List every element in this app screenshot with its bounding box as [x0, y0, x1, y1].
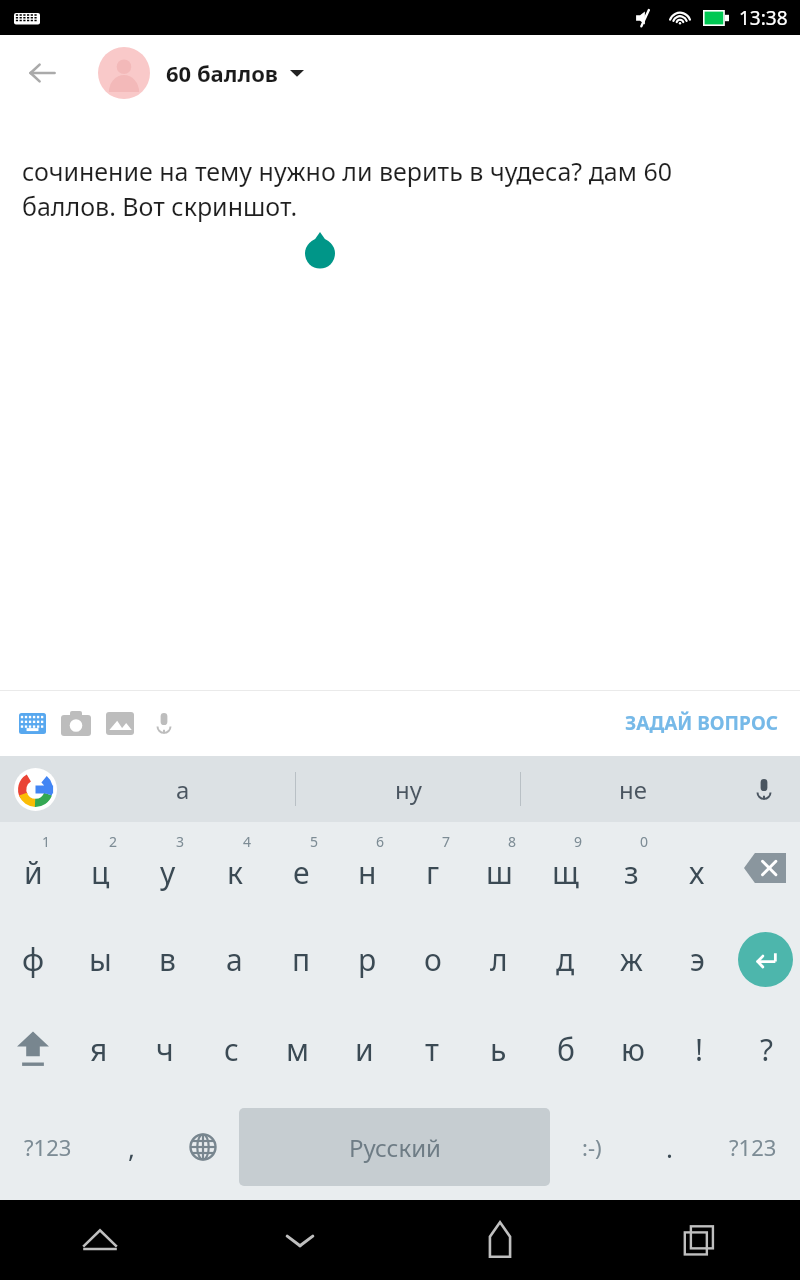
button[interactable]: Google: [14, 768, 57, 811]
button[interactable]: .: [633, 1094, 705, 1200]
button[interactable]: а: [201, 914, 268, 1004]
staticText: 9: [574, 832, 583, 851]
staticText: щ: [552, 852, 579, 893]
button[interactable]: е: [268, 822, 334, 914]
button[interactable]: Русский: [239, 1108, 550, 1186]
staticText: а: [226, 939, 243, 980]
staticText: ?123: [729, 1132, 777, 1162]
button[interactable]: Change language: [167, 1094, 239, 1200]
button[interactable]: ,: [95, 1094, 167, 1200]
staticText: ЗАДАЙ ВОПРОС: [625, 710, 778, 736]
button[interactable]: щ: [532, 822, 598, 914]
staticText: ?123: [24, 1132, 72, 1162]
button[interactable]: Enter: [730, 914, 800, 1004]
staticText: ?: [760, 1029, 774, 1070]
button[interactable]: у: [134, 822, 201, 914]
staticText: з: [624, 852, 639, 893]
button[interactable]: Backspace: [730, 822, 800, 914]
staticText: ,: [128, 1130, 135, 1165]
staticText: !: [695, 1029, 704, 1070]
button[interactable]: э: [664, 914, 730, 1004]
button[interactable]: ?123: [705, 1094, 800, 1200]
staticText: 3: [176, 832, 185, 851]
button[interactable]: Home: [400, 1200, 600, 1280]
staticText: д: [556, 939, 575, 980]
button[interactable]: н: [334, 822, 400, 914]
button[interactable]: ф: [0, 914, 67, 1004]
button[interactable]: д: [532, 914, 598, 1004]
staticText: 2: [109, 832, 118, 851]
button[interactable]: л: [466, 914, 532, 1004]
staticText: с: [224, 1029, 239, 1070]
button[interactable]: ?123: [0, 1094, 95, 1200]
staticText: и: [355, 1029, 374, 1070]
button[interactable]: Keyboard: [12, 703, 52, 743]
button[interactable]: Gallery: [100, 703, 140, 743]
button[interactable]: р: [334, 914, 400, 1004]
button[interactable]: 60 баллов: [98, 47, 304, 99]
staticText: ы: [89, 939, 112, 980]
button[interactable]: п: [268, 914, 334, 1004]
button[interactable]: я: [66, 1004, 132, 1094]
staticText: 13:38: [739, 5, 788, 31]
button[interactable]: ?: [733, 1004, 800, 1094]
staticText: ш: [486, 852, 513, 893]
staticText: ч: [156, 1029, 174, 1070]
button[interactable]: Back: [14, 45, 70, 101]
button[interactable]: ЗАДАЙ ВОПРОС: [621, 702, 782, 744]
button[interactable]: Shift: [0, 1004, 66, 1094]
button[interactable]: к: [201, 822, 268, 914]
button[interactable]: ш: [466, 822, 532, 914]
button[interactable]: Voice: [144, 703, 184, 743]
button[interactable]: Camera: [56, 703, 96, 743]
staticText: ж: [620, 939, 643, 980]
button[interactable]: а: [70, 756, 295, 822]
staticText: г: [426, 852, 440, 893]
staticText: 1: [42, 832, 51, 851]
staticText: о: [424, 939, 442, 980]
button[interactable]: ы: [67, 914, 134, 1004]
staticText: л: [490, 939, 508, 980]
button[interactable]: й: [0, 822, 67, 914]
button[interactable]: о: [400, 914, 466, 1004]
staticText: е: [293, 852, 310, 893]
button[interactable]: б: [532, 1004, 599, 1094]
staticText: м: [286, 1029, 310, 1070]
button[interactable]: Recent apps: [600, 1200, 800, 1280]
staticText: н: [358, 852, 377, 893]
button[interactable]: не: [521, 756, 745, 822]
button[interactable]: ц: [67, 822, 134, 914]
staticText: сочинение на тему нужно ли верить в чуде…: [22, 154, 745, 224]
button[interactable]: Voice input: [742, 767, 786, 811]
staticText: к: [227, 852, 243, 893]
staticText: х: [689, 852, 705, 893]
button[interactable]: :-): [550, 1094, 633, 1200]
button[interactable]: т: [398, 1004, 465, 1094]
button[interactable]: !: [666, 1004, 733, 1094]
button[interactable]: г: [400, 822, 466, 914]
button[interactable]: ю: [599, 1004, 666, 1094]
staticText: 7: [442, 832, 451, 851]
button[interactable]: ч: [132, 1004, 198, 1094]
button[interactable]: Hide keyboard: [200, 1200, 400, 1280]
staticText: :-): [582, 1132, 602, 1162]
button[interactable]: ь: [465, 1004, 532, 1094]
button[interactable]: ну: [296, 756, 520, 822]
button[interactable]: м: [264, 1004, 331, 1094]
staticText: й: [24, 852, 43, 893]
staticText: т: [425, 1029, 439, 1070]
button[interactable]: и: [331, 1004, 398, 1094]
button[interactable]: Back: [0, 1200, 200, 1280]
staticText: 6: [376, 832, 385, 851]
button[interactable]: с: [198, 1004, 264, 1094]
button[interactable]: ж: [598, 914, 664, 1004]
staticText: р: [358, 939, 377, 980]
staticText: ю: [621, 1029, 645, 1070]
staticText: 60 баллов: [166, 58, 278, 88]
button[interactable]: з: [598, 822, 664, 914]
staticText: 0: [640, 832, 649, 851]
staticText: 5: [310, 832, 319, 851]
button[interactable]: х: [664, 822, 730, 914]
staticText: .: [666, 1130, 673, 1165]
button[interactable]: в: [134, 914, 201, 1004]
